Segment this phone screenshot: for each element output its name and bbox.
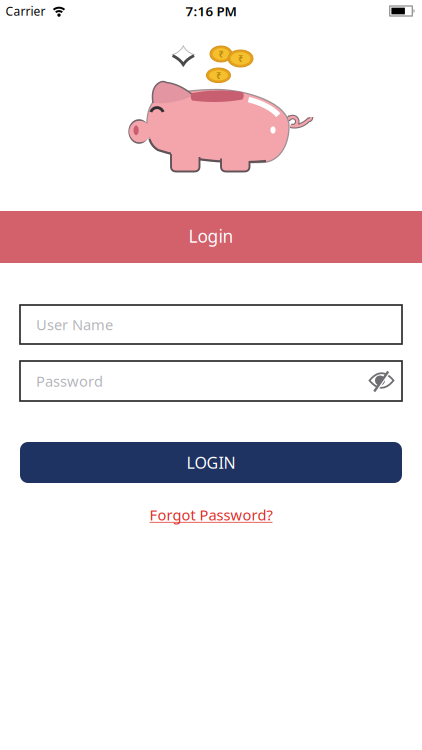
- staticText: Carrier: [5, 3, 45, 19]
- staticText: User Name: [36, 315, 113, 334]
- staticText: ₹: [238, 52, 243, 65]
- staticText: ₹: [216, 69, 221, 81]
- button[interactable]: LOGIN: [20, 442, 402, 483]
- button[interactable]: Forgot Password?: [149, 505, 272, 524]
- button[interactable]: Show Password: [368, 370, 395, 391]
- staticText: Forgot Password?: [149, 505, 272, 524]
- staticText: Login: [188, 224, 233, 247]
- staticText: Password: [36, 371, 103, 391]
- staticText: ₹: [218, 48, 223, 60]
- button[interactable]: User Name: [20, 305, 402, 344]
- button[interactable]: Password: [20, 361, 402, 401]
- staticText: LOGIN: [186, 452, 235, 473]
- staticText: 7:16 PM: [185, 2, 236, 20]
